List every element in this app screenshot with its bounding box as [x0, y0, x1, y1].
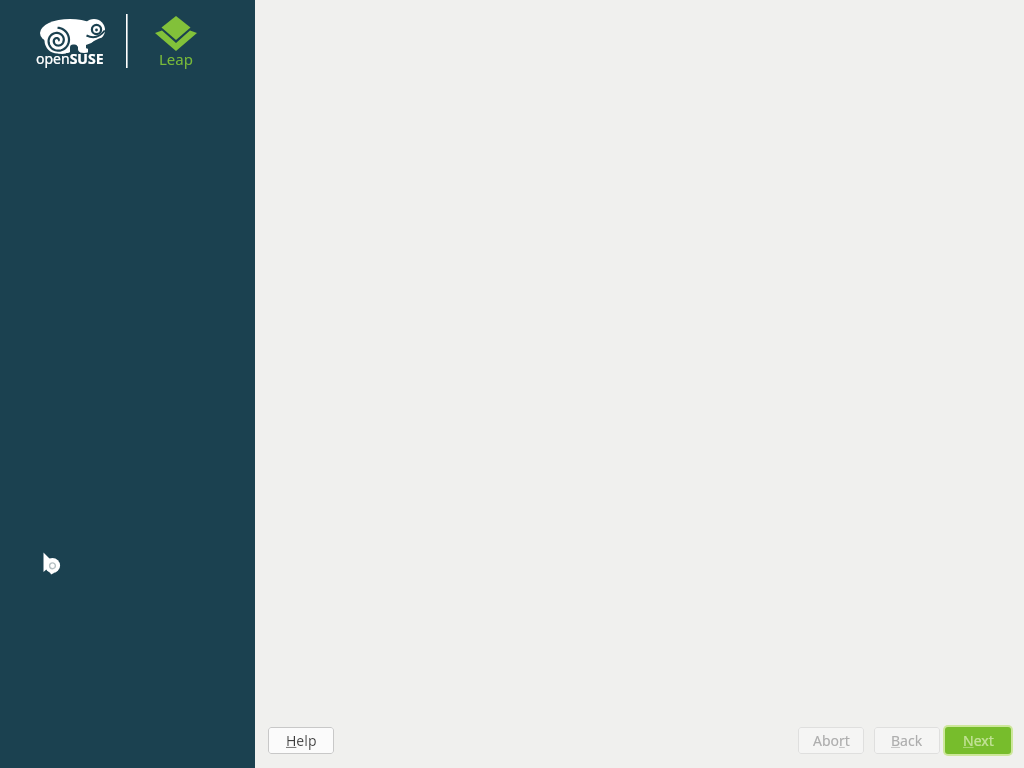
- button[interactable]: Next: [945, 727, 1011, 754]
- staticText: Abort: [813, 731, 850, 750]
- staticText: openSUSE: [36, 49, 104, 68]
- staticText: Back: [891, 731, 923, 750]
- button[interactable]: Abort: [798, 727, 864, 754]
- staticText: Leap: [159, 49, 193, 69]
- button[interactable]: Back: [874, 727, 940, 754]
- button[interactable]: Help: [268, 727, 334, 754]
- staticText: Help: [286, 731, 317, 750]
- staticText: Next: [963, 731, 994, 750]
